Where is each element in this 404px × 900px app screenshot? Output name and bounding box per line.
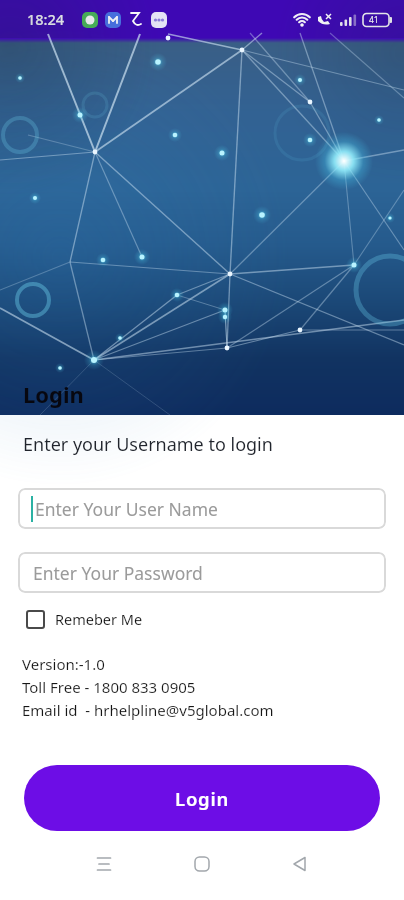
staticText: Version:-1.0	[22, 654, 105, 674]
button[interactable]	[80, 840, 128, 888]
staticText: Enter Your Password	[33, 561, 203, 585]
button[interactable]: Enter Your User Name	[18, 488, 386, 529]
button[interactable]	[178, 840, 226, 888]
button[interactable]: Login	[24, 765, 380, 831]
staticText: 41	[369, 14, 379, 26]
staticText: Login	[175, 786, 230, 811]
button[interactable]: Remeber Me	[26, 609, 143, 629]
staticText: Remeber Me	[55, 609, 143, 629]
staticText: Toll Free - 1800 833 0905	[22, 677, 196, 697]
button[interactable]	[276, 840, 324, 888]
staticText: Login	[23, 379, 84, 409]
staticText: Enter your Username to login	[23, 432, 273, 457]
button[interactable]: Enter Your Password	[18, 552, 386, 593]
staticText: Email id - hrhelpline@v5global.com	[22, 700, 274, 720]
staticText: Enter Your User Name	[35, 497, 218, 521]
staticText: 18:24	[27, 9, 65, 29]
